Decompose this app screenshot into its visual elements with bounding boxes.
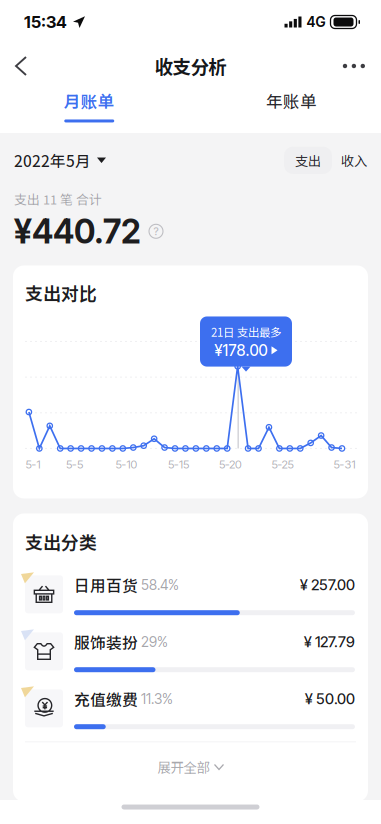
staticText: 月账单: [64, 88, 115, 112]
staticText: ¥ 50.00: [305, 690, 355, 708]
staticText: 5-1: [25, 457, 40, 471]
staticText: 5-15: [168, 457, 189, 471]
staticText: 日用百货: [74, 573, 138, 596]
staticText: 5-10: [115, 457, 137, 471]
button[interactable]: 展开全部: [13, 742, 368, 792]
staticText: ¥ 127.79: [304, 633, 355, 651]
button[interactable]: 日用百货: [25, 575, 355, 613]
staticText: 支出对比: [25, 279, 97, 305]
staticText: 年账单: [266, 88, 317, 112]
staticText: 21日 支出最多: [211, 323, 281, 340]
staticText: 15:34: [24, 12, 67, 32]
button[interactable]: 月账单: [34, 85, 144, 135]
button[interactable]: 2022年5月: [14, 145, 106, 176]
staticText: 4G: [306, 13, 325, 30]
button[interactable]: 年账单: [236, 85, 346, 135]
button[interactable]: More options: [327, 44, 381, 88]
staticText: 5-20: [219, 457, 242, 471]
staticText: ¥440.72: [14, 211, 141, 251]
staticText: 收支分析: [154, 53, 226, 79]
staticText: 29%: [138, 633, 168, 650]
button[interactable]: 服饰装扮: [25, 632, 355, 670]
staticText: 58.4%: [138, 576, 179, 593]
staticText: ¥ 257.00: [300, 576, 355, 594]
staticText: ¥178.00: [214, 341, 267, 360]
staticText: 5-5: [66, 457, 83, 471]
button[interactable]: Back: [0, 44, 42, 88]
staticText: ?: [153, 225, 158, 238]
staticText: 支出 11 笔 合计: [14, 190, 102, 208]
staticText: 支出分类: [25, 528, 97, 554]
staticText: 支出: [295, 151, 321, 170]
staticText: 5-25: [271, 457, 293, 471]
staticText: 2022年5月: [14, 149, 91, 172]
button[interactable]: 充值缴费: [25, 689, 355, 727]
button[interactable]: 支出: [284, 147, 332, 174]
staticText: 充值缴费: [74, 687, 138, 710]
staticText: 服饰装扮: [74, 630, 138, 653]
staticText: 收入: [341, 151, 367, 170]
staticText: 展开全部: [157, 757, 209, 777]
staticText: 5-31: [334, 457, 356, 471]
button[interactable]: 收入: [341, 147, 367, 174]
staticText: 11.3%: [138, 690, 173, 707]
